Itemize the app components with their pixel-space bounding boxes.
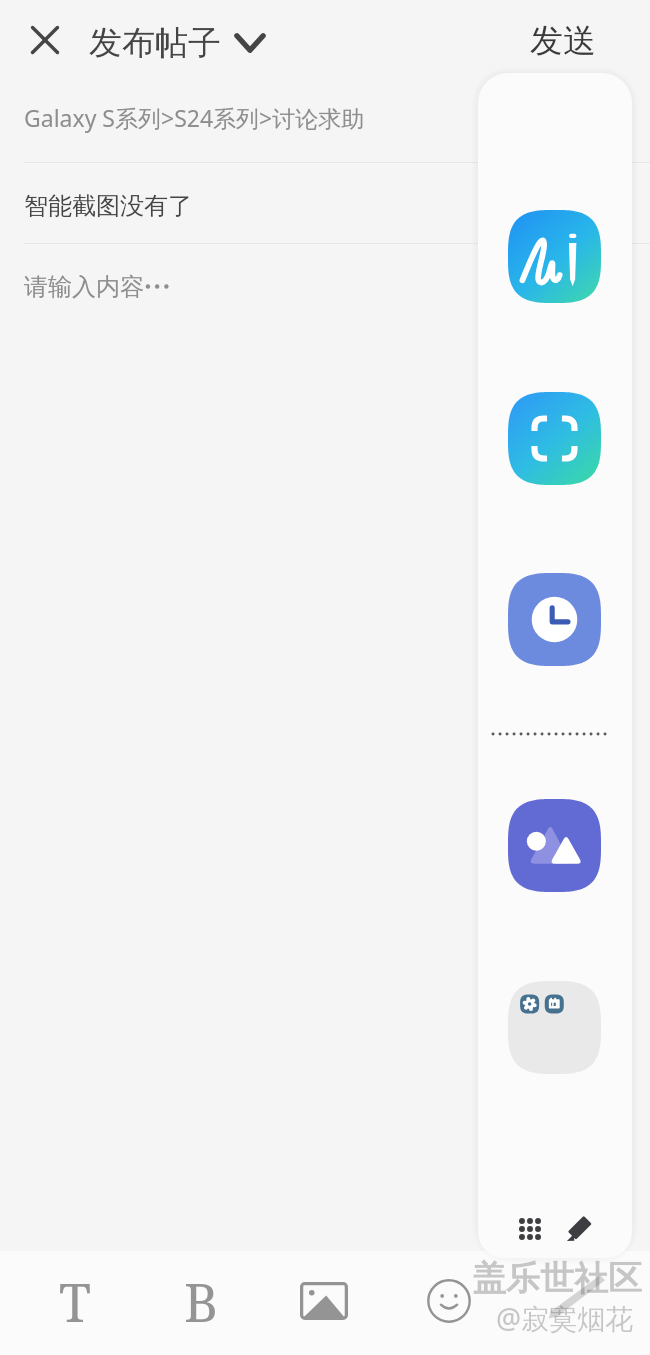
button[interactable]: App xyxy=(508,392,601,485)
staticText: 发送 xyxy=(530,20,596,62)
staticText: 智能截图没有了 xyxy=(24,191,192,221)
staticText: T xyxy=(59,1266,91,1337)
button[interactable]: App xyxy=(508,981,601,1074)
button[interactable]: 发布帖子 xyxy=(89,22,266,64)
button[interactable]: 发送 xyxy=(512,12,614,70)
button[interactable]: Galaxy S系列>S24系列>讨论求助 xyxy=(0,82,650,152)
staticText: 发布帖子 xyxy=(89,22,221,64)
button[interactable]: 请输入内容 xyxy=(0,244,650,330)
staticText: Galaxy S系列>S24系列>讨论求助 xyxy=(24,102,365,133)
button[interactable]: Apps xyxy=(504,1203,556,1255)
button[interactable]: Close xyxy=(16,11,74,69)
staticText: @寂寞烟花 xyxy=(496,1299,634,1337)
button[interactable]: App xyxy=(508,210,601,303)
button[interactable]: Text style xyxy=(20,1249,130,1353)
button[interactable]: Emoji xyxy=(394,1249,504,1353)
staticText: 盖乐世社区 xyxy=(472,1257,642,1300)
button[interactable]: App xyxy=(508,573,601,666)
button[interactable]: 智能截图没有了 xyxy=(0,166,650,246)
staticText: B xyxy=(184,1266,219,1337)
button[interactable]: App xyxy=(508,799,601,892)
button[interactable]: Insert image xyxy=(269,1249,379,1353)
button[interactable]: Edit xyxy=(552,1203,604,1255)
staticText: 请输入内容 xyxy=(24,272,144,302)
button[interactable]: Bold xyxy=(146,1249,256,1353)
